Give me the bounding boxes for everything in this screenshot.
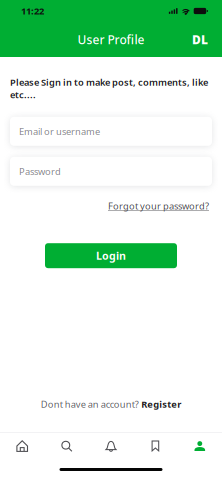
staticText: Forgot your password?	[108, 200, 209, 212]
staticText: Register	[141, 398, 181, 410]
button[interactable]: Search	[44, 434, 89, 458]
button[interactable]: Saved	[133, 434, 178, 458]
button[interactable]: Register	[141, 398, 181, 410]
button[interactable]: Home	[0, 434, 44, 458]
button[interactable]: Login	[45, 243, 177, 268]
button[interactable]: App logo	[188, 26, 212, 52]
button[interactable]: Password	[10, 157, 212, 186]
staticText: User Profile	[77, 31, 144, 47]
button[interactable]: Profile	[178, 434, 222, 458]
button[interactable]: Notifications	[89, 434, 133, 458]
staticText: Please Sign in to make post, comments, l…	[10, 76, 208, 101]
staticText: DL	[192, 31, 208, 47]
staticText: Login	[96, 249, 126, 263]
staticText: Dont have an account?	[41, 398, 139, 410]
staticText: 11:22	[21, 5, 44, 17]
button[interactable]: Forgot your password?	[108, 198, 209, 214]
staticText: Password	[19, 165, 61, 177]
button[interactable]: Email or username	[10, 117, 212, 146]
staticText: Email or username	[19, 125, 100, 137]
